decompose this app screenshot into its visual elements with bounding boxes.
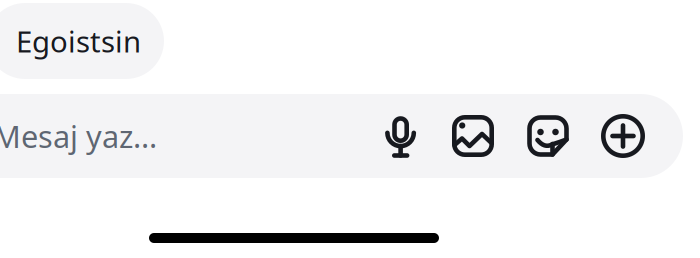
- button[interactable]: Photos: [452, 115, 494, 157]
- staticText: Egoistsin: [16, 21, 141, 60]
- button[interactable]: More options: [601, 114, 645, 158]
- button[interactable]: Record voice message: [383, 115, 417, 157]
- staticText: Mesaj yaz...: [0, 116, 157, 156]
- button[interactable]: Stickers: [527, 115, 569, 157]
- button[interactable]: Egoistsin: [0, 3, 164, 79]
